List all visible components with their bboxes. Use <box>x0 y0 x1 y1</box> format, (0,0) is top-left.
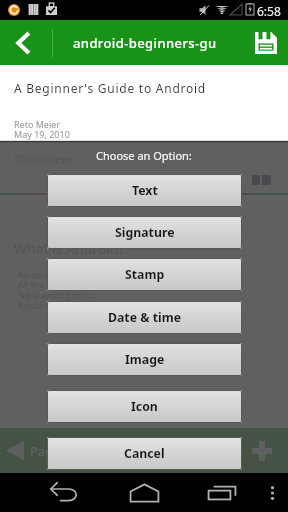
button[interactable]: Home <box>124 478 164 508</box>
staticText: Image <box>125 351 165 368</box>
button[interactable]: Stamp <box>47 258 242 291</box>
button[interactable]: Back <box>44 479 84 507</box>
staticText: Page <box>30 442 61 460</box>
staticText: android-beginners-gu <box>73 34 217 52</box>
staticText: No licensing fees <box>18 289 90 301</box>
button[interactable]: Icon <box>47 390 242 423</box>
button[interactable]: Save <box>243 20 288 65</box>
staticText: Text <box>132 182 158 199</box>
staticText: Choose an Option: <box>96 148 192 163</box>
button[interactable]: Cancel <box>47 437 242 470</box>
staticText: 6:58 <box>257 3 281 19</box>
button[interactable]: Recent apps <box>202 478 242 508</box>
staticText: A Beginner's Guide to Android <box>14 80 206 96</box>
staticText: Cancel <box>124 445 165 462</box>
staticText: Replaces... <box>18 299 63 311</box>
button[interactable]: More options <box>262 479 283 507</box>
button[interactable]: Signature <box>47 216 242 249</box>
staticText: May 19, 2010 <box>14 128 70 140</box>
staticText: What is Android? <box>14 239 125 258</box>
staticText: Icon <box>131 398 158 415</box>
staticText: Stamp <box>125 266 165 283</box>
button[interactable]: Image <box>47 343 242 376</box>
button[interactable]: Date & time <box>47 301 242 334</box>
staticText: An open source platform <box>18 268 124 280</box>
staticText: Date & time <box>108 309 182 326</box>
staticText: Signature <box>115 224 175 241</box>
staticText: Reto Meier <box>14 118 61 130</box>
button[interactable]: Text <box>47 174 242 207</box>
staticText: All the S... <box>18 278 60 290</box>
button[interactable]: Navigate up <box>0 20 46 65</box>
